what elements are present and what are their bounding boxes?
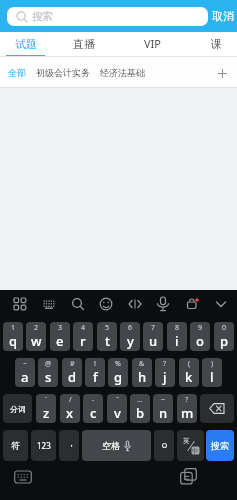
button[interactable]: ! xyxy=(85,358,105,387)
button[interactable]: ˇ xyxy=(107,394,127,423)
staticText: 试题 xyxy=(15,37,37,51)
button[interactable]: … xyxy=(130,394,150,423)
button[interactable]: & xyxy=(132,358,152,387)
staticText: g xyxy=(114,368,123,386)
button[interactable]: ` xyxy=(36,394,56,423)
button[interactable]: 4 xyxy=(73,322,93,351)
staticText: q xyxy=(9,332,18,350)
button[interactable]: ? xyxy=(155,358,175,387)
staticText: ! xyxy=(94,359,96,369)
button[interactable]: ~ xyxy=(15,358,35,387)
button[interactable]: VIP xyxy=(122,32,182,55)
staticText: ~ xyxy=(23,359,28,369)
staticText: 9 xyxy=(198,323,203,333)
staticText: k xyxy=(185,368,193,386)
staticText: 4 xyxy=(81,323,86,333)
button[interactable]: 5 xyxy=(97,322,117,351)
button[interactable]: 直播 xyxy=(54,32,114,55)
staticText: i xyxy=(175,332,179,350)
staticText: 英 xyxy=(183,437,190,445)
staticText: # xyxy=(70,359,75,369)
button[interactable]: % xyxy=(108,358,128,387)
staticText: ? xyxy=(185,395,189,405)
staticText: ) xyxy=(211,359,214,369)
staticText: 搜索 xyxy=(32,10,53,23)
button[interactable] xyxy=(182,294,202,314)
staticText: l xyxy=(210,368,214,386)
button[interactable]: ) xyxy=(202,358,222,387)
button[interactable] xyxy=(14,469,32,485)
button[interactable] xyxy=(213,64,231,82)
staticText: ˇ xyxy=(116,395,119,405)
staticText: n xyxy=(159,404,168,422)
staticText: f xyxy=(93,368,98,386)
button[interactable]: 全部 xyxy=(8,67,26,78)
button[interactable]: 2 xyxy=(26,322,46,351)
staticText: ( xyxy=(188,359,191,369)
staticText: - xyxy=(92,395,95,405)
button[interactable] xyxy=(39,294,59,314)
button[interactable]: ( xyxy=(179,358,199,387)
button[interactable]: # xyxy=(62,358,82,387)
button[interactable]: 空格 xyxy=(82,430,151,461)
staticText: % xyxy=(115,359,121,369)
button[interactable]: 取消 xyxy=(212,9,237,23)
staticText: 5 xyxy=(105,323,110,333)
staticText: r xyxy=(80,332,86,350)
staticText: y xyxy=(127,332,134,350)
button[interactable]: 搜索 xyxy=(7,7,208,26)
button[interactable]: 课 xyxy=(186,32,237,55)
button[interactable]: ， xyxy=(59,430,79,461)
button[interactable]: 搜索 xyxy=(206,430,234,461)
staticText: h xyxy=(138,368,147,386)
button[interactable] xyxy=(180,468,198,485)
button[interactable]: 初级会计实务 xyxy=(36,67,90,78)
button[interactable] xyxy=(125,294,145,314)
staticText: & xyxy=(139,359,145,369)
button[interactable]: 分词 xyxy=(3,394,32,423)
staticText: ? xyxy=(163,359,167,369)
staticText: 3 xyxy=(58,323,63,333)
staticText: 2 xyxy=(34,323,39,333)
button[interactable]: 1 xyxy=(3,322,23,351)
staticText: p xyxy=(220,332,229,350)
button[interactable]: 3 xyxy=(50,322,70,351)
staticText: … xyxy=(137,395,143,405)
staticText: 课 xyxy=(211,37,222,51)
button[interactable]: ? xyxy=(177,394,197,423)
button[interactable]: 8 xyxy=(167,322,187,351)
staticText: 8 xyxy=(175,323,180,333)
button[interactable]: - xyxy=(83,394,103,423)
staticText: 符 xyxy=(11,440,20,451)
button[interactable]: ~ xyxy=(153,394,173,423)
staticText: j xyxy=(163,368,167,386)
button[interactable] xyxy=(200,394,234,423)
staticText: c xyxy=(90,404,97,422)
button[interactable]: @ xyxy=(38,358,58,387)
staticText: e xyxy=(56,332,64,350)
staticText: 分词 xyxy=(10,404,26,414)
button[interactable]: 试题 xyxy=(0,32,56,55)
button[interactable] xyxy=(10,294,30,314)
button[interactable] xyxy=(153,294,173,314)
button[interactable]: 9 xyxy=(190,322,210,351)
button[interactable]: / xyxy=(60,394,80,423)
button[interactable] xyxy=(96,294,116,314)
staticText: 1 xyxy=(11,323,16,333)
button[interactable]: 0 xyxy=(214,322,234,351)
staticText: b xyxy=(136,404,145,422)
button[interactable]: 符 xyxy=(3,430,28,461)
button[interactable] xyxy=(154,430,174,461)
button[interactable]: 英 xyxy=(177,430,204,461)
button[interactable] xyxy=(68,294,88,314)
staticText: v xyxy=(114,404,121,422)
staticText: 0 xyxy=(222,323,227,333)
staticText: 6 xyxy=(128,323,133,333)
button[interactable] xyxy=(211,294,231,314)
staticText: a xyxy=(21,368,29,386)
button[interactable]: 经济法基础 xyxy=(100,67,145,78)
staticText: / xyxy=(69,395,72,405)
button[interactable]: 123 xyxy=(31,430,56,461)
button[interactable]: 7 xyxy=(143,322,163,351)
button[interactable]: 6 xyxy=(120,322,140,351)
